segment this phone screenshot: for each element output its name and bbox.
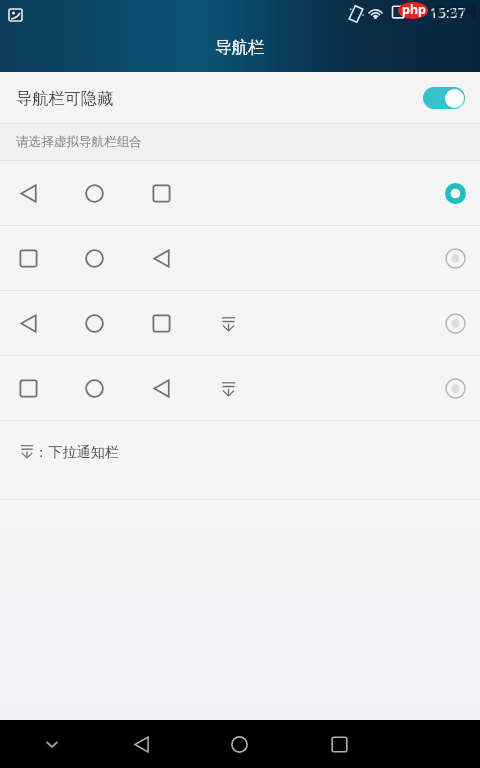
staticText: 导航栏可隐藏 [16,88,114,108]
button[interactable]: 导航栏可隐藏 [0,72,480,123]
button[interactable] [0,291,480,355]
button[interactable]: Recent apps [305,720,373,768]
staticText: 中文网 [433,2,477,20]
staticText: 15:37 [430,3,466,22]
staticText: ：下拉通知栏 [34,443,120,461]
button[interactable]: Hide navigation bar [14,720,90,768]
staticText: 导航栏 [215,37,265,58]
staticText: php [402,1,426,18]
button[interactable] [0,356,480,420]
button[interactable]: Back [107,720,175,768]
button[interactable] [0,161,480,225]
staticText: 请选择虚拟导航栏组合 [16,134,142,150]
button[interactable] [0,226,480,290]
button[interactable]: Home [205,720,273,768]
